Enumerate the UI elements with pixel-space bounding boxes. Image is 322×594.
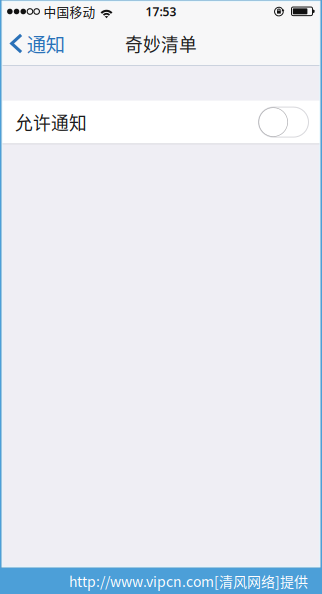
- staticText: 通知: [27, 29, 65, 57]
- staticText: 奇妙清单: [125, 31, 197, 56]
- button[interactable]: 允许通知: [2, 101, 320, 144]
- staticText: 17:53: [145, 3, 176, 19]
- button[interactable]: 通知: [2, 22, 75, 65]
- staticText: 允许通知: [15, 109, 87, 135]
- staticText: http://www.vipcn.com[清风网络]提供: [69, 571, 308, 591]
- staticText: 中国移动: [43, 2, 95, 21]
